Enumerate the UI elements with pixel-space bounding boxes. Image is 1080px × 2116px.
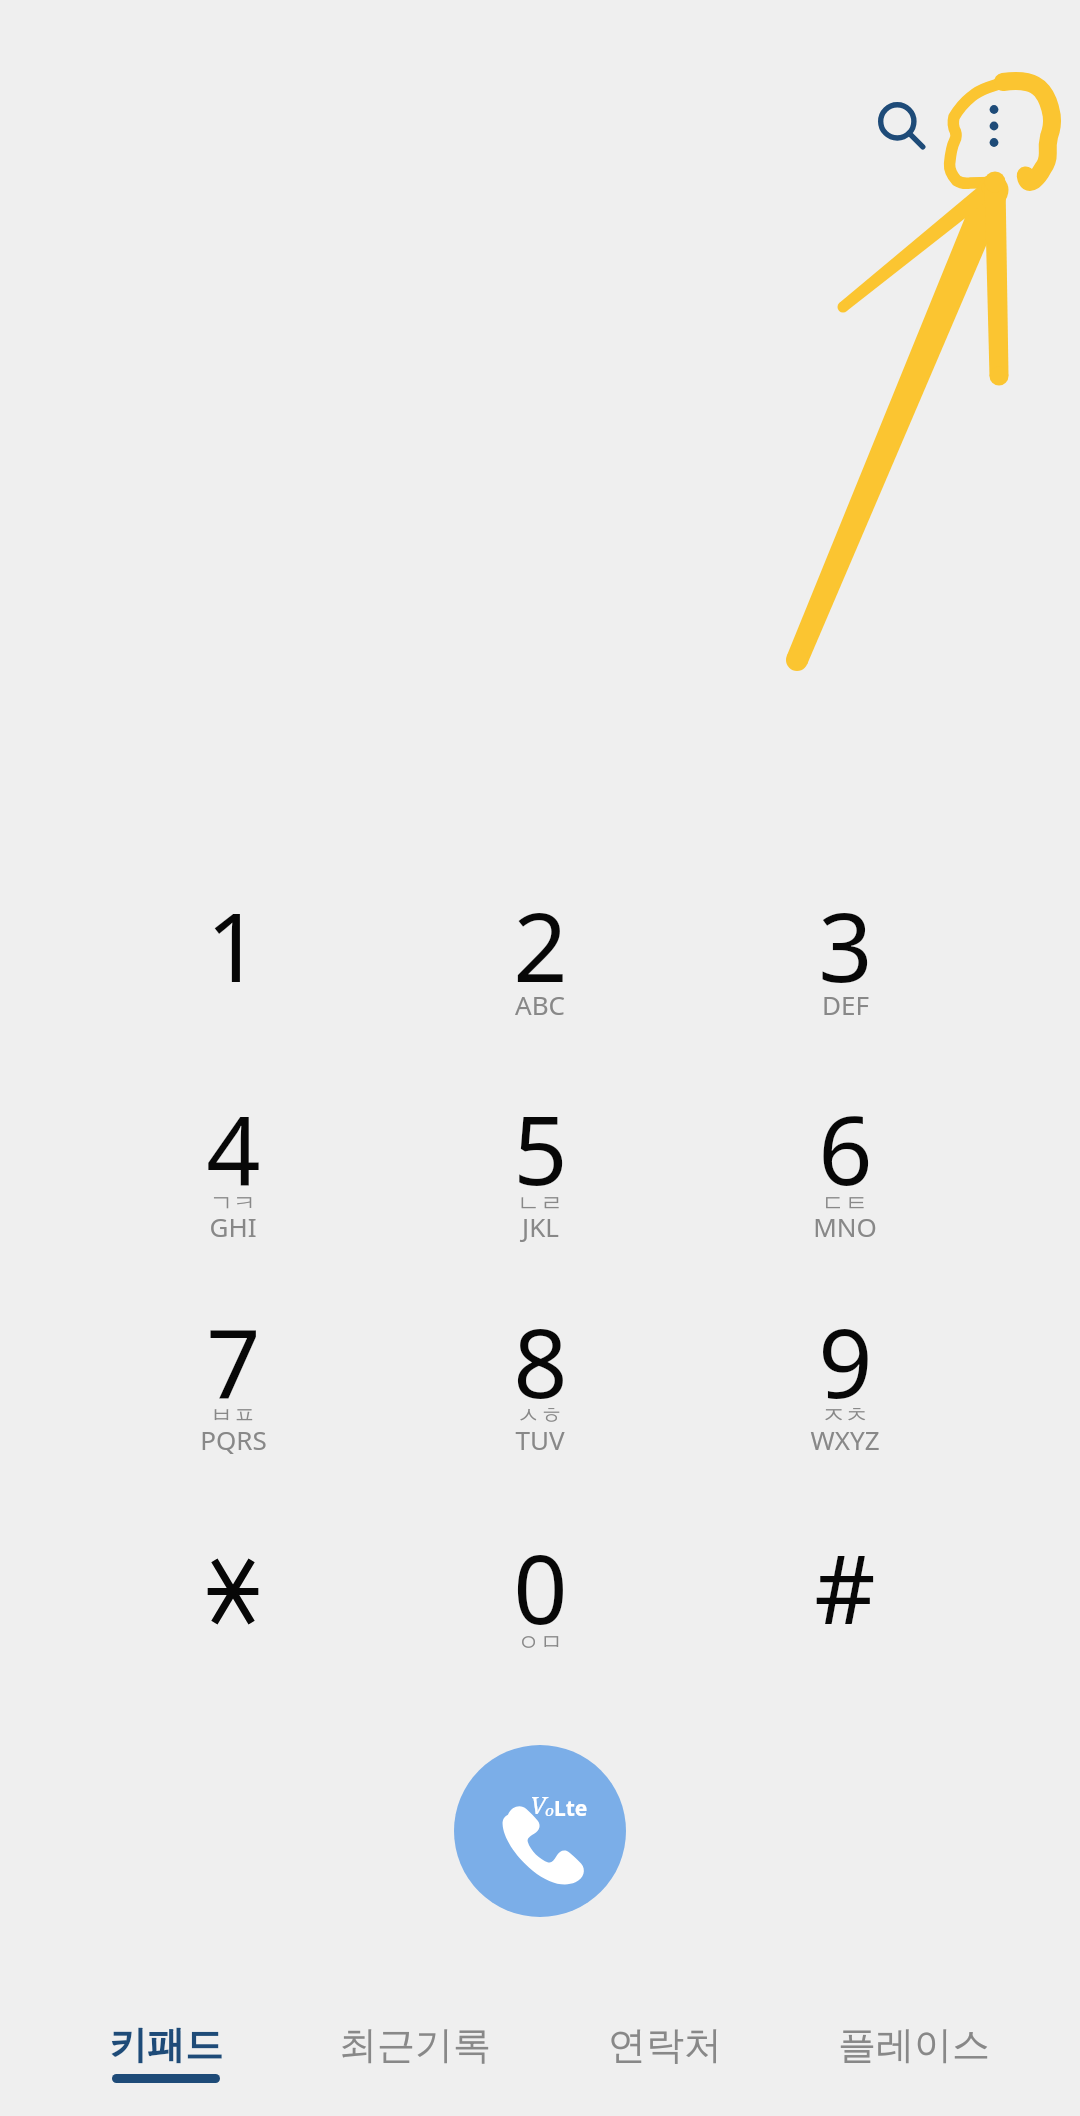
- button[interactable]: Search: [852, 76, 942, 166]
- button[interactable]: star: [118, 1494, 348, 1684]
- staticText: 9: [818, 1296, 873, 1425]
- staticText: #: [814, 1522, 876, 1651]
- button[interactable]: 연락처: [541, 2000, 789, 2116]
- button[interactable]: 9: [730, 1268, 960, 1458]
- staticText: ㄴㄹ: [517, 1189, 563, 1218]
- button[interactable]: 0: [425, 1494, 655, 1684]
- staticText: 5: [513, 1083, 568, 1212]
- staticText: 2: [513, 880, 568, 1009]
- staticText: TUV: [515, 1422, 565, 1457]
- button[interactable]: 8: [425, 1268, 655, 1458]
- button[interactable]: Call: [454, 1745, 626, 1917]
- staticText: ABC: [515, 987, 565, 1022]
- staticText: 7: [206, 1296, 261, 1425]
- staticText: Lte: [554, 1794, 588, 1823]
- staticText: ㅅㅎ: [517, 1401, 563, 1430]
- staticText: ㄱㅋ: [210, 1189, 256, 1218]
- staticText: JKL: [522, 1209, 559, 1244]
- staticText: 8: [513, 1296, 568, 1425]
- staticText: 1: [206, 880, 261, 1009]
- staticText: 4: [206, 1083, 261, 1212]
- staticText: ㅇㅁ: [517, 1628, 563, 1657]
- staticText: ㅈㅊ: [822, 1401, 868, 1430]
- staticText: ㅂㅍ: [210, 1401, 256, 1430]
- staticText: DEF: [822, 987, 869, 1022]
- button[interactable]: 1: [118, 852, 348, 1042]
- button[interactable]: 4: [118, 1055, 348, 1245]
- staticText: GHI: [209, 1209, 257, 1244]
- button[interactable]: 키패드: [42, 2000, 290, 2116]
- button[interactable]: pound: [730, 1494, 960, 1684]
- staticText: 3: [818, 880, 873, 1009]
- button[interactable]: 7: [118, 1268, 348, 1458]
- staticText: 플레이스: [838, 2021, 990, 2069]
- staticText: 연락처: [608, 2021, 722, 2069]
- button[interactable]: 최근기록: [291, 2000, 539, 2116]
- button[interactable]: More options: [949, 76, 1039, 166]
- button[interactable]: 6: [730, 1055, 960, 1245]
- staticText: ㄷㅌ: [822, 1189, 868, 1218]
- staticText: MNO: [813, 1209, 877, 1244]
- staticText: 0: [513, 1522, 568, 1651]
- staticText: WXYZ: [810, 1422, 880, 1457]
- staticText: 최근기록: [339, 2021, 491, 2069]
- button[interactable]: 5: [425, 1055, 655, 1245]
- button[interactable]: 2: [425, 852, 655, 1042]
- staticText: PQRS: [200, 1422, 267, 1457]
- staticText: 키패드: [109, 2021, 223, 2069]
- button[interactable]: 3: [730, 852, 960, 1042]
- button[interactable]: 플레이스: [790, 2000, 1038, 2116]
- staticText: Vₒ: [530, 1788, 556, 1821]
- staticText: 6: [818, 1083, 873, 1212]
